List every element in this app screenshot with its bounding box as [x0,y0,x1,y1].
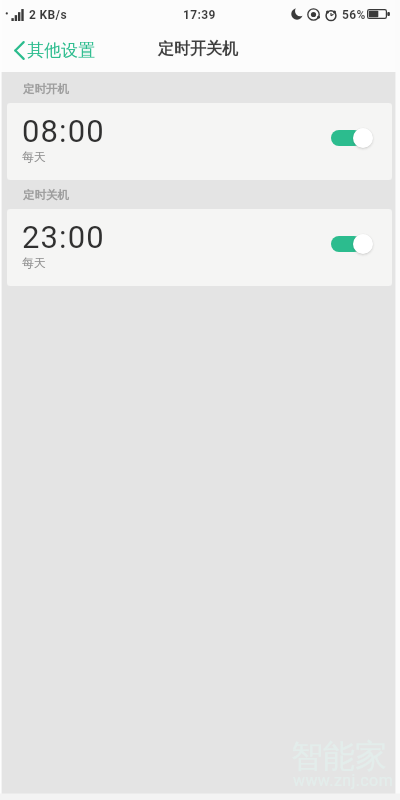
staticText: 08:00 [22,113,105,149]
staticText: 17:39 [183,8,216,22]
button[interactable]: 其他设置 [0,32,109,69]
button[interactable]: 08:00 [7,103,392,180]
staticText: 每天 [22,255,46,270]
staticText: www.znj.com [293,771,394,790]
staticText: 智能家 [291,736,387,776]
staticText: 每天 [22,149,46,164]
button[interactable]: 定时开关机 开关 [331,232,372,256]
button[interactable]: 23:00 [7,209,392,286]
button[interactable]: 定时开关机 开关 [331,126,372,150]
staticText: 定时关机 [23,188,69,202]
staticText: 其他设置 [27,40,95,61]
staticText: 定时开机 [23,82,69,96]
staticText: 23:00 [22,219,105,255]
staticText: 2 KB/s [29,8,67,22]
staticText: 定时开关机 [158,39,238,59]
staticText: 56% [342,8,366,22]
